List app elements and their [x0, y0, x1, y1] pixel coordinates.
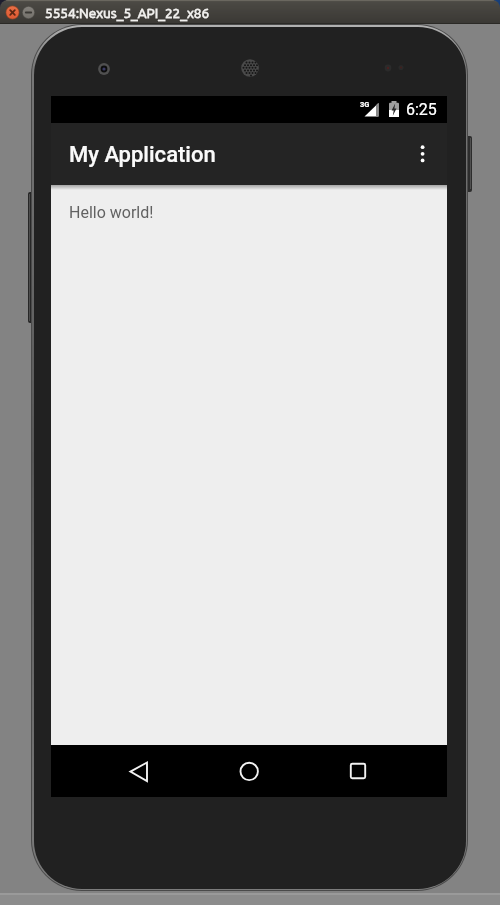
button[interactable] — [6, 6, 20, 20]
button[interactable] — [22, 6, 35, 19]
staticText: 3G — [360, 100, 370, 109]
button[interactable] — [115, 749, 160, 794]
staticText: Hello world! — [69, 203, 154, 222]
staticText: My Application — [69, 142, 216, 168]
staticText: 5554:Nexus_5_API_22_x86 — [45, 5, 210, 20]
button[interactable] — [336, 749, 381, 794]
button[interactable] — [227, 749, 272, 794]
button[interactable] — [404, 128, 442, 180]
staticText: 6:25 — [406, 100, 437, 119]
